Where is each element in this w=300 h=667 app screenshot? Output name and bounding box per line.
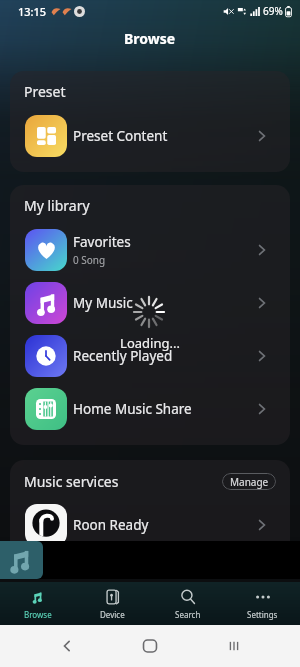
button[interactable]: Search — [150, 582, 225, 625]
button[interactable]: Home Music Share — [10, 382, 290, 435]
staticText: Music services — [24, 472, 119, 491]
staticText: Recently Played — [73, 347, 173, 365]
staticText: My library — [24, 196, 90, 215]
staticText: Search — [175, 609, 201, 620]
staticText: Home Music Share — [73, 400, 192, 418]
staticText: Favorites — [73, 233, 131, 251]
staticText: 0 Song — [73, 253, 106, 267]
staticText: My Music — [73, 294, 133, 312]
button[interactable]: Roon Ready — [10, 498, 290, 551]
button[interactable]: Home — [141, 637, 159, 655]
button[interactable]: Recent apps — [225, 637, 243, 655]
button[interactable]: Recently Played — [10, 329, 290, 382]
staticText: Manage — [230, 475, 269, 489]
button[interactable]: Favorites — [10, 223, 290, 276]
staticText: Preset Content — [73, 127, 168, 145]
button[interactable]: My Music — [10, 276, 290, 329]
staticText: Loading... — [118, 334, 182, 352]
button[interactable]: Preset Content — [10, 109, 290, 162]
button[interactable]: Settings — [225, 582, 300, 625]
button[interactable]: Manage — [222, 473, 276, 490]
button[interactable]: Back — [58, 637, 76, 655]
staticText: Browse — [24, 609, 52, 620]
button[interactable]: Browse — [0, 582, 75, 625]
staticText: Roon Ready — [73, 516, 149, 534]
staticText: 13:15 — [18, 4, 47, 19]
staticText: Settings — [247, 609, 278, 620]
staticText: Device — [100, 609, 125, 620]
staticText: 69% — [263, 4, 283, 18]
staticText: Browse — [124, 29, 176, 48]
button[interactable]: Device — [75, 582, 150, 625]
staticText: Preset — [24, 82, 66, 101]
